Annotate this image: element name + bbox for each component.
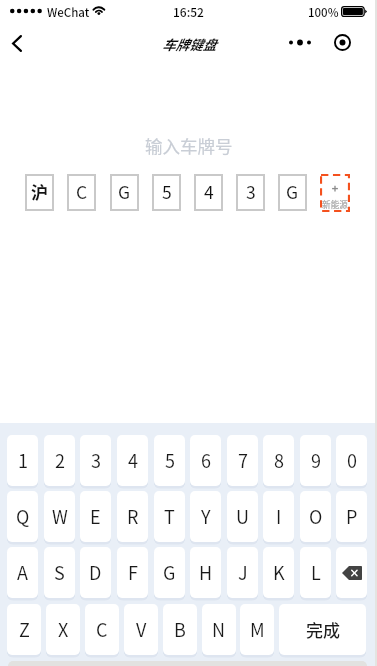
staticText: I [276,503,282,529]
staticText: 4 [204,179,214,204]
button[interactable]: S [44,547,75,598]
button[interactable]: T [154,491,185,542]
button[interactable]: B [163,604,197,655]
staticText: E [90,503,101,529]
button[interactable]: Z [7,604,41,655]
button[interactable]: Close [329,29,356,56]
staticText: R [127,503,139,529]
staticText: V [136,616,147,642]
button[interactable]: 7 [227,435,258,486]
staticText: X [58,616,69,642]
button[interactable]: Y [190,491,221,542]
staticText: 1 [18,447,28,473]
staticText: B [174,616,186,642]
button[interactable]: Back [0,26,33,60]
staticText: L [311,559,321,585]
button[interactable]: D [80,547,111,598]
staticText: Q [16,503,30,529]
button[interactable]: K [263,547,294,598]
staticText: S [54,559,65,585]
button[interactable]: More options [283,30,317,55]
button[interactable]: 5 [152,174,181,211]
button[interactable]: J [227,547,258,598]
staticText: 0 [347,447,357,473]
button[interactable]: 3 [236,174,265,211]
button[interactable]: Q [7,491,38,542]
staticText: 输入车牌号 [145,133,233,158]
button[interactable]: F [117,547,148,598]
staticText: 4 [128,447,138,473]
button[interactable]: M [240,604,274,655]
staticText: F [128,559,138,585]
button[interactable]: P [336,491,367,542]
staticText: 8 [274,447,284,473]
button[interactable]: G [154,547,185,598]
button[interactable]: C [67,174,96,211]
staticText: W [52,503,68,529]
button[interactable]: L [300,547,331,598]
button[interactable]: 完成 [279,604,366,655]
staticText: K [273,559,285,585]
staticText: 2 [55,447,65,473]
staticText: P [346,503,358,529]
button[interactable]: 1 [7,435,38,486]
staticText: 新能源 [322,198,348,210]
button[interactable]: 3 [80,435,111,486]
button[interactable]: G [278,174,307,211]
button[interactable]: 新能源 [320,174,350,212]
staticText: 6 [201,447,211,473]
staticText: 沪 [31,179,48,204]
staticText: M [250,616,265,642]
staticText: WeChat [47,4,90,21]
staticText: D [89,559,102,585]
staticText: N [212,616,226,642]
button[interactable]: H [190,547,221,598]
button[interactable]: 2 [44,435,75,486]
staticText: Z [19,616,30,642]
staticText: 5 [165,447,175,473]
staticText: Y [201,503,211,529]
staticText: J [238,559,248,585]
staticText: H [199,559,213,585]
staticText: A [17,559,28,585]
button[interactable]: 0 [336,435,367,486]
button[interactable]: R [117,491,148,542]
staticText: T [164,503,175,529]
button[interactable]: 6 [190,435,221,486]
staticText: 100% [308,4,339,21]
button[interactable]: A [7,547,38,598]
button[interactable]: N [202,604,236,655]
button[interactable]: W [44,491,75,542]
staticText: 3 [91,447,101,473]
button[interactable]: O [300,491,331,542]
button[interactable]: 沪 [25,174,54,211]
staticText: 9 [311,447,321,473]
button[interactable]: Backspace [336,547,367,598]
staticText: 16:52 [173,3,204,20]
button[interactable]: X [46,604,80,655]
button[interactable]: 4 [194,174,223,211]
staticText: 7 [238,447,248,473]
staticText: 3 [246,179,256,204]
button[interactable]: C [85,604,119,655]
button[interactable]: V [124,604,158,655]
staticText: G [163,559,176,585]
button[interactable]: 8 [263,435,294,486]
staticText: G [118,179,131,204]
button[interactable]: E [80,491,111,542]
button[interactable]: U [227,491,258,542]
staticText: O [309,503,323,529]
staticText: 5 [162,179,172,204]
button[interactable]: 4 [117,435,148,486]
button[interactable]: I [263,491,294,542]
button[interactable]: G [110,174,139,211]
staticText: 车牌键盘 [162,34,216,54]
staticText: 完成 [306,617,340,642]
button[interactable]: 5 [154,435,185,486]
staticText: C [96,616,108,642]
button[interactable]: 9 [300,435,331,486]
staticText: C [76,179,88,204]
staticText: G [286,179,299,204]
staticText: U [236,503,249,529]
